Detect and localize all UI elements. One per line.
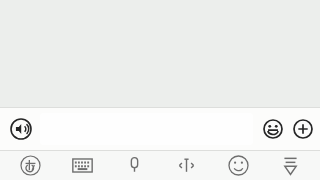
button[interactable]: Stickers — [216, 151, 260, 180]
button[interactable]: Input mode — [8, 151, 52, 180]
button[interactable]: Add attachment — [290, 116, 316, 142]
button[interactable]: Emoji — [260, 116, 286, 142]
button[interactable]: Move cursor — [164, 151, 208, 180]
button[interactable]: Voice typing — [112, 151, 156, 180]
button[interactable]: Keyboard — [60, 151, 104, 180]
button[interactable]: Hide keyboard — [268, 151, 312, 180]
button[interactable]: Voice input — [7, 115, 35, 143]
